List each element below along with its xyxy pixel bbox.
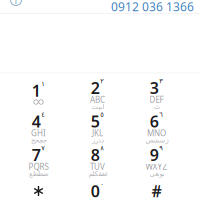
staticText: 1 bbox=[32, 80, 41, 101]
staticText: PQRS bbox=[28, 161, 48, 172]
staticText: JKL bbox=[92, 128, 103, 138]
button[interactable]: 1 bbox=[9, 73, 68, 107]
staticText: TUV bbox=[90, 161, 105, 172]
button[interactable]: # bbox=[127, 174, 186, 200]
staticText: MNO bbox=[147, 128, 166, 138]
staticText: ٧ bbox=[41, 144, 45, 152]
staticText: ٤ bbox=[41, 111, 45, 118]
staticText: ث bbox=[153, 103, 159, 111]
staticText: ٢ bbox=[100, 77, 104, 85]
staticText: جچحخ bbox=[30, 136, 46, 144]
staticText: غفقکلم bbox=[88, 170, 107, 178]
staticText: ٥ bbox=[100, 111, 104, 118]
staticText: نوهی bbox=[149, 170, 164, 178]
staticText: 0 bbox=[91, 180, 100, 200]
staticText: 5 bbox=[91, 111, 100, 132]
staticText: ژسشص bbox=[145, 136, 168, 144]
button[interactable] bbox=[9, 174, 68, 200]
staticText: ABC bbox=[90, 94, 105, 105]
button[interactable]: 8 bbox=[68, 140, 127, 174]
staticText: DEF bbox=[149, 94, 163, 105]
staticText: ضطظع bbox=[28, 170, 48, 178]
button[interactable]: 0912 036 1366 bbox=[111, 0, 200, 13]
staticText: 6 bbox=[150, 111, 159, 132]
staticText: دذرز bbox=[91, 136, 103, 144]
staticText: ٣ bbox=[159, 77, 163, 85]
button[interactable]: 5 bbox=[68, 107, 127, 140]
staticText: ٠ bbox=[100, 180, 104, 188]
staticText: 9 bbox=[150, 144, 159, 165]
staticText: ٨ bbox=[100, 144, 104, 152]
button[interactable]: 6 bbox=[127, 107, 186, 140]
staticText: ابپت bbox=[91, 103, 104, 111]
staticText: WXYZ bbox=[145, 161, 167, 172]
staticText: ٦ bbox=[159, 111, 163, 118]
button[interactable]: Call info bbox=[0, 0, 30, 12]
staticText: GHI bbox=[31, 128, 46, 138]
staticText: 0912 036 1366 bbox=[111, 0, 194, 14]
staticText: 7 bbox=[32, 144, 41, 165]
staticText: 4 bbox=[32, 111, 41, 132]
button[interactable]: 7 bbox=[9, 140, 68, 174]
button[interactable]: 0 bbox=[68, 174, 127, 200]
button[interactable]: 4 bbox=[9, 107, 68, 140]
staticText: ١ bbox=[41, 80, 45, 87]
staticText: 3 bbox=[150, 77, 159, 98]
staticText: 8 bbox=[91, 144, 100, 165]
button[interactable]: 3 bbox=[127, 73, 186, 107]
staticText: # bbox=[151, 180, 161, 200]
button[interactable]: 2 bbox=[68, 73, 127, 107]
button[interactable]: 9 bbox=[127, 140, 186, 174]
staticText: 2 bbox=[91, 77, 100, 98]
staticText: i bbox=[14, 0, 17, 7]
staticText: ٩ bbox=[159, 144, 163, 152]
